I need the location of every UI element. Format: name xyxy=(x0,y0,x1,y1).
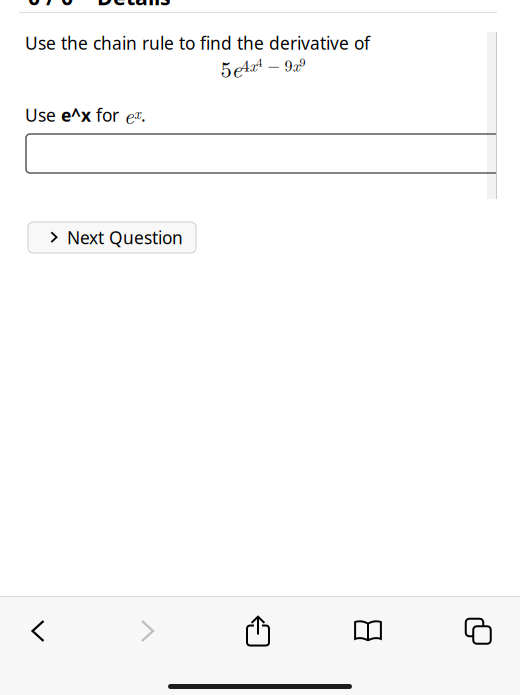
button[interactable]: Share xyxy=(203,600,313,662)
staticText: 5e4x4 − 9x9 xyxy=(220,52,305,84)
staticText: for xyxy=(91,103,124,126)
staticText: e^x xyxy=(61,103,91,126)
button[interactable]: Forward xyxy=(59,600,203,662)
staticText: Use xyxy=(25,103,61,126)
staticText: . xyxy=(141,103,146,126)
button[interactable]: Back xyxy=(17,600,59,662)
staticText: Use the chain rule to find the derivativ… xyxy=(25,31,370,54)
staticText: Next Question xyxy=(67,226,183,249)
staticText: ex xyxy=(124,100,141,130)
button[interactable]: Bookmarks xyxy=(313,600,423,662)
staticText: 0 / 0 Details xyxy=(28,0,171,11)
button[interactable]: Next Question xyxy=(28,222,196,253)
button[interactable]: Tabs xyxy=(423,600,520,662)
